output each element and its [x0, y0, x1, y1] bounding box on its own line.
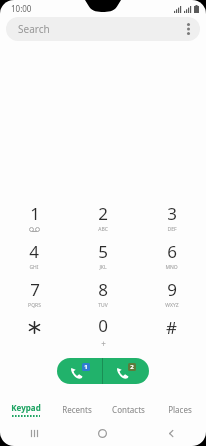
- staticText: 10:00: [11, 3, 32, 14]
- button[interactable]: More options: [176, 17, 200, 41]
- staticText: Search: [18, 22, 50, 36]
- button[interactable]: Places: [154, 398, 206, 420]
- staticText: Recents: [62, 404, 92, 415]
- staticText: 6: [167, 240, 177, 263]
- staticText: +: [101, 338, 106, 349]
- button[interactable]: 3: [137, 198, 206, 236]
- button[interactable]: 2: [68, 198, 137, 236]
- staticText: PQRS: [28, 302, 41, 309]
- button[interactable]: 4: [0, 236, 68, 274]
- staticText: Keypad: [11, 402, 41, 413]
- staticText: 0: [98, 314, 108, 337]
- button[interactable]: [0, 312, 68, 350]
- button[interactable]: Back: [137, 420, 206, 446]
- staticText: TUV: [98, 302, 108, 309]
- button[interactable]: Call with SIM 1: [57, 358, 102, 384]
- staticText: #: [166, 316, 177, 339]
- button[interactable]: Home: [68, 420, 137, 446]
- button[interactable]: 0: [68, 312, 137, 350]
- staticText: 1: [30, 202, 40, 225]
- button[interactable]: Contacts: [102, 398, 154, 420]
- staticText: Contacts: [112, 404, 145, 415]
- staticText: Places: [168, 404, 192, 415]
- button[interactable]: 1: [0, 198, 68, 236]
- staticText: 2: [98, 202, 108, 225]
- button[interactable]: 7: [0, 274, 68, 312]
- button[interactable]: #: [137, 312, 206, 350]
- staticText: DEF: [167, 226, 177, 233]
- staticText: GHI: [29, 264, 39, 271]
- button[interactable]: Recent apps: [0, 420, 68, 446]
- button[interactable]: 9: [137, 274, 206, 312]
- button[interactable]: Search: [6, 17, 200, 41]
- staticText: 7: [30, 278, 40, 301]
- staticText: 2: [130, 363, 134, 371]
- button[interactable]: 5: [68, 236, 137, 274]
- staticText: 1: [84, 363, 88, 371]
- button[interactable]: Call with SIM 2: [103, 358, 149, 384]
- staticText: 3: [167, 202, 177, 225]
- button[interactable]: 6: [137, 236, 206, 274]
- button[interactable]: Keypad: [0, 398, 51, 420]
- button[interactable]: Recents: [51, 398, 102, 420]
- staticText: 4: [29, 240, 39, 263]
- staticText: WXYZ: [165, 302, 179, 309]
- staticText: 8: [98, 278, 108, 301]
- staticText: 9: [167, 278, 177, 301]
- staticText: 5: [98, 240, 108, 263]
- button[interactable]: 8: [68, 274, 137, 312]
- staticText: ABC: [98, 226, 108, 233]
- staticText: MNO: [165, 264, 178, 271]
- staticText: JKL: [99, 264, 107, 271]
